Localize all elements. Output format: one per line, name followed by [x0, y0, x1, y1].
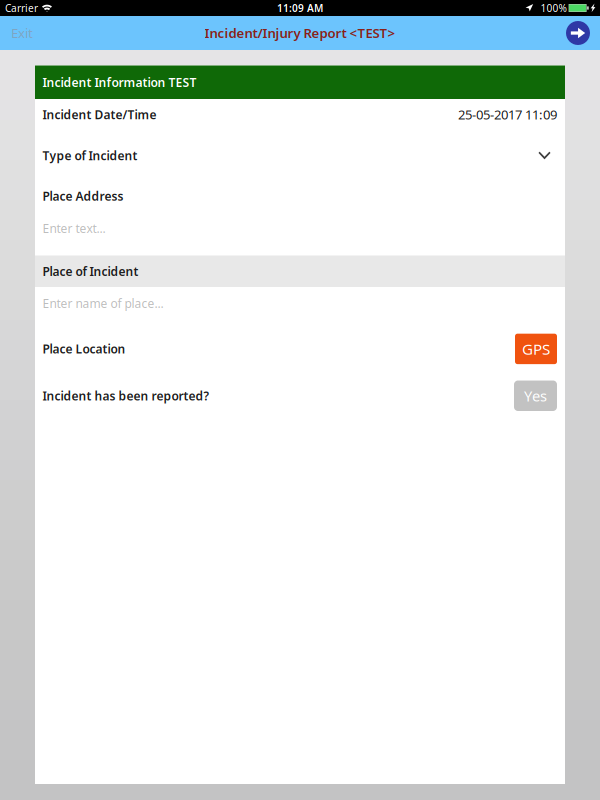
staticText: Place Address: [42, 188, 123, 204]
staticText: Incident Information TEST: [42, 74, 196, 90]
staticText: Incident/Injury Report <TEST>: [204, 24, 395, 42]
staticText: Incident has been reported?: [42, 388, 209, 404]
staticText: Place Location: [42, 341, 125, 357]
button[interactable]: Enter name of place...: [35, 287, 565, 320]
button[interactable]: Enter text...: [35, 211, 565, 245]
button[interactable]: Next: [566, 16, 600, 50]
staticText: Type of Incident: [42, 147, 137, 163]
staticText: 25-05-2017 11:09: [458, 106, 557, 123]
button[interactable]: GPS: [515, 334, 557, 364]
staticText: 100%: [541, 1, 567, 15]
staticText: 11:09 AM: [277, 1, 323, 15]
button[interactable]: Yes: [514, 380, 557, 411]
staticText: Exit: [11, 24, 33, 42]
staticText: GPS: [522, 339, 550, 359]
staticText: Incident Date/Time: [42, 106, 156, 122]
button[interactable]: Incident Date/Time: [35, 99, 565, 130]
staticText: Place of Incident: [42, 263, 138, 279]
staticText: Yes: [524, 386, 547, 405]
staticText: Carrier: [5, 1, 38, 15]
staticText: Enter name of place...: [42, 295, 163, 311]
button[interactable]: Type of Incident: [35, 130, 565, 181]
button[interactable]: Exit: [0, 16, 70, 50]
staticText: Enter text...: [42, 220, 105, 236]
